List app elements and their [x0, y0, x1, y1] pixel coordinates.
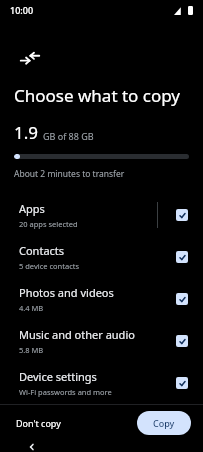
staticText: 5.8 MB: [19, 345, 44, 355]
button[interactable]: Apps checkbox: [169, 202, 195, 228]
staticText: Photos and videos: [19, 285, 114, 300]
staticText: Don't copy: [16, 417, 61, 429]
button[interactable]: Music and other audio checkbox: [169, 328, 195, 354]
button[interactable]: Don't copy: [12, 412, 65, 434]
staticText: About 2 minutes to transfer: [14, 168, 125, 180]
staticText: Copy: [153, 417, 175, 429]
button[interactable]: Device settings checkbox: [169, 370, 195, 396]
staticText: 10:00: [10, 4, 34, 16]
button[interactable]: Photos and videos: [0, 278, 203, 320]
staticText: Apps: [19, 201, 45, 216]
button[interactable]: Copy: [137, 411, 191, 435]
button[interactable]: Photos and videos checkbox: [169, 286, 195, 312]
button[interactable]: Back: [22, 441, 42, 452]
staticText: Music and other audio: [19, 327, 135, 342]
staticText: 1.9: [14, 121, 39, 144]
button[interactable]: Music and other audio: [0, 320, 203, 362]
button[interactable]: Transfer: [14, 42, 46, 74]
staticText: 20 apps selected: [19, 219, 78, 229]
button[interactable]: Contacts checkbox: [169, 244, 195, 270]
button[interactable]: Apps: [0, 194, 203, 236]
staticText: Wi-Fi passwords and more: [19, 387, 112, 397]
staticText: 4.4 MB: [19, 303, 44, 313]
staticText: 5 device contacts: [19, 261, 80, 271]
staticText: GB of 88 GB: [43, 130, 94, 142]
staticText: Choose what to copy: [14, 84, 181, 107]
staticText: Contacts: [19, 243, 65, 258]
staticText: Device settings: [19, 369, 97, 384]
button[interactable]: Contacts: [0, 236, 203, 278]
button[interactable]: Device settings: [0, 362, 203, 404]
